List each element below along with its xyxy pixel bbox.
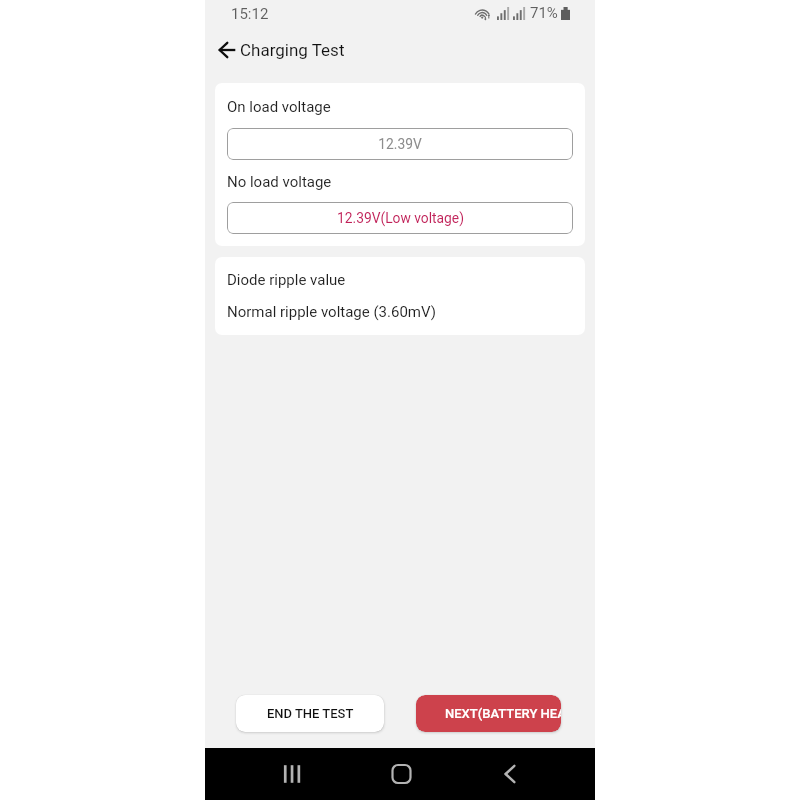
staticText: No load voltage — [227, 173, 332, 191]
staticText: Charging Test — [240, 40, 345, 60]
staticText: Normal ripple voltage (3.60mV) — [227, 303, 436, 321]
button[interactable]: Home — [381, 754, 421, 794]
button[interactable]: Back — [490, 754, 530, 794]
staticText: Diode ripple value — [227, 271, 346, 289]
staticText: 71% — [530, 4, 558, 22]
staticText: On load voltage — [227, 98, 331, 116]
button[interactable]: NEXT(BATTERY HEALTH) — [416, 695, 561, 732]
staticText: 15:12 — [231, 5, 269, 23]
staticText: 12.39V(Low voltage) — [337, 210, 464, 226]
button[interactable]: Recent apps — [272, 754, 312, 794]
staticText: 12.39V — [378, 136, 422, 152]
staticText: NEXT(BATTERY HEALTH) — [445, 706, 561, 721]
button[interactable]: Back — [214, 37, 240, 63]
button[interactable]: END THE TEST — [236, 695, 384, 732]
staticText: END THE TEST — [267, 706, 354, 721]
